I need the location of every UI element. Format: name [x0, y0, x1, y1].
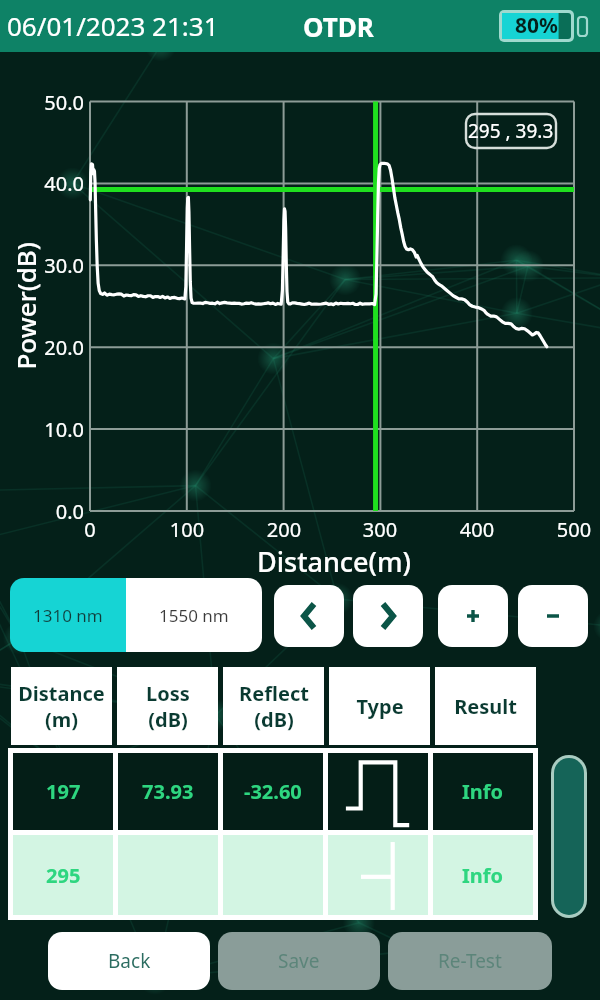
button[interactable]	[328, 835, 428, 915]
button[interactable]: Info	[433, 753, 533, 830]
button[interactable]: Save	[218, 932, 380, 990]
staticText: 200	[266, 516, 302, 543]
button[interactable]: Info	[433, 835, 533, 915]
staticText: Back	[108, 948, 151, 974]
button[interactable]: Result	[435, 667, 536, 745]
staticText: Type	[356, 693, 404, 720]
button[interactable]: Loss (dB)	[117, 667, 218, 745]
staticText: 1550 nm	[159, 604, 229, 627]
button[interactable]: Re-Test	[388, 932, 552, 990]
button[interactable]: Zoom out	[518, 585, 588, 647]
staticText: 0.0	[55, 498, 84, 525]
button[interactable]: Reflect (dB)	[223, 667, 324, 745]
button[interactable]: Scroll	[554, 758, 584, 915]
staticText: Save	[278, 948, 320, 974]
button[interactable]: Distance (m)	[11, 667, 112, 745]
button[interactable]: 197	[13, 753, 113, 830]
button[interactable]: Zoom in	[438, 585, 508, 647]
staticText: -32.60	[244, 778, 302, 805]
staticText: 40.0	[44, 170, 84, 197]
staticText: Re-Test	[438, 948, 502, 974]
staticText: 20.0	[44, 334, 84, 361]
staticText: 197	[46, 778, 81, 805]
staticText: 100	[169, 516, 205, 543]
staticText: 30.0	[44, 252, 84, 279]
staticText: Info	[462, 778, 504, 805]
staticText: Result	[454, 693, 517, 720]
button[interactable]: -32.60	[223, 753, 323, 830]
staticText: 06/01/2023 21:31	[7, 8, 219, 43]
staticText: Distance(m)	[257, 543, 412, 580]
button[interactable]	[328, 753, 428, 830]
staticText: Power(dB)	[7, 241, 42, 369]
staticText: Info	[462, 862, 504, 889]
staticText: 50.0	[44, 89, 84, 116]
staticText: 80%	[515, 11, 558, 40]
staticText: 295 , 39.3	[468, 118, 554, 144]
button[interactable]: 73.93	[118, 753, 218, 830]
staticText: 500	[556, 516, 592, 543]
staticText: Reflect (dB)	[239, 680, 309, 733]
button[interactable]: Next	[353, 585, 423, 647]
staticText: OTDR	[303, 9, 374, 44]
staticText: 400	[459, 516, 495, 543]
staticText: Loss (dB)	[146, 680, 190, 733]
staticText: 10.0	[44, 416, 84, 443]
staticText: 1310 nm	[33, 604, 103, 627]
button[interactable]: Back	[48, 932, 210, 990]
staticText: Distance (m)	[18, 680, 105, 733]
staticText: 295	[46, 862, 81, 889]
staticText: 0	[72, 516, 108, 543]
button[interactable]: 1550 nm	[126, 578, 262, 652]
button[interactable]: Type	[329, 667, 430, 745]
button[interactable]: Previous	[274, 585, 344, 647]
staticText: 73.93	[142, 778, 194, 805]
staticText: 300	[362, 516, 398, 543]
button[interactable]: 1310 nm	[10, 578, 126, 652]
button[interactable]: 295	[13, 835, 113, 915]
